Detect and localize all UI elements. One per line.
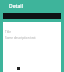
staticText: Some description text: [5, 36, 36, 40]
staticText: Title: [5, 30, 11, 34]
staticText: Detail: [9, 3, 24, 10]
button[interactable]: Detail: [0, 0, 64, 13]
